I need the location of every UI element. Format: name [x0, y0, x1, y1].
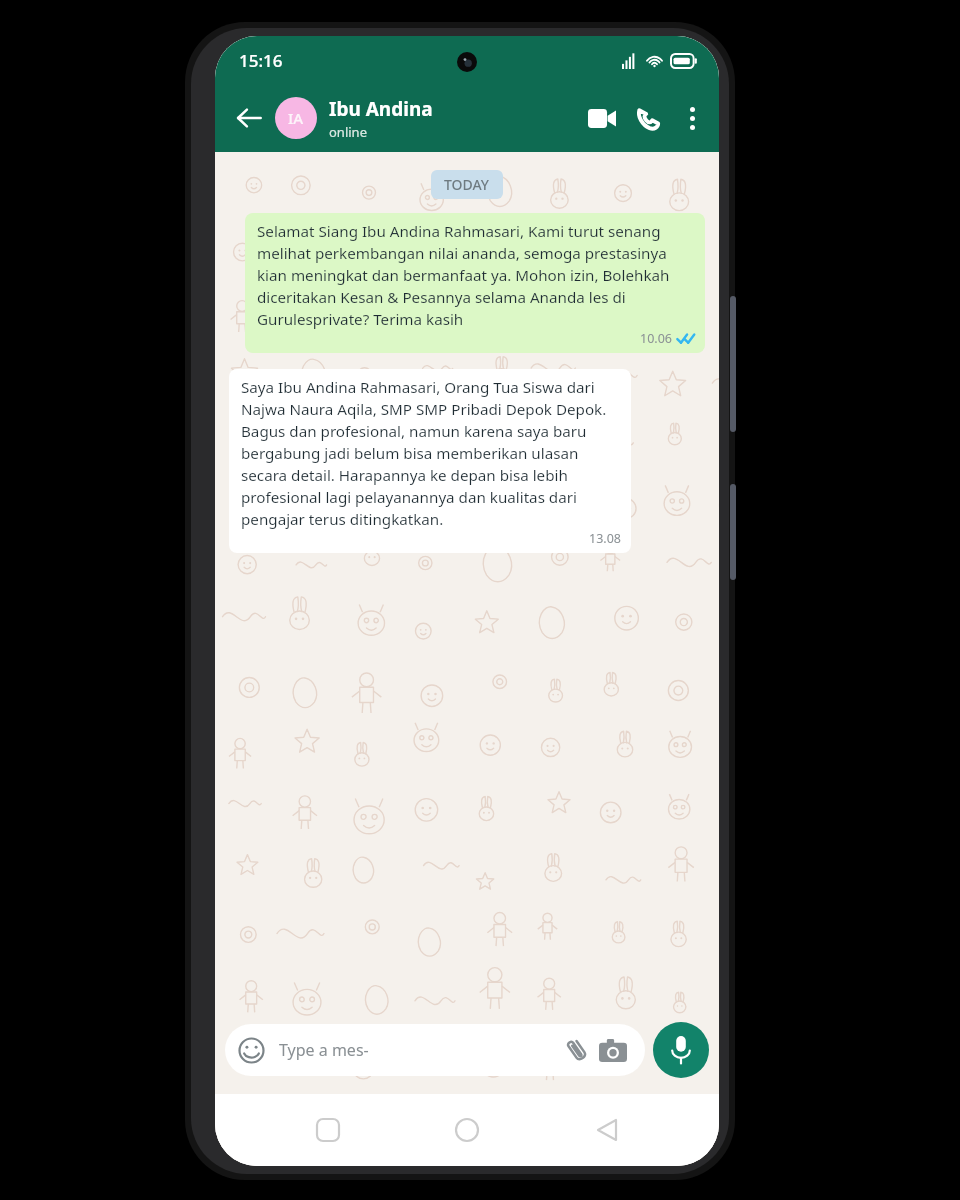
button[interactable]: Video call [579, 95, 625, 141]
button[interactable]: IA [271, 84, 579, 152]
button[interactable]: Back [580, 1103, 634, 1157]
other: Emoji [235, 1034, 267, 1066]
staticText: Selamat Siang Ibu Andina Rahmasari, Kami… [257, 221, 695, 329]
button[interactable]: More options [671, 97, 713, 139]
staticText: 15:16 [239, 49, 283, 72]
button[interactable]: Selamat Siang Ibu Andina Rahmasari, Kami… [245, 213, 705, 353]
staticText: IA [288, 108, 304, 128]
staticText: Type a mes- [279, 1039, 559, 1061]
staticText: Saya Ibu Andina Rahmasari, Orang Tua Sis… [241, 377, 621, 529]
button[interactable]: Home [440, 1103, 494, 1157]
staticText: online [329, 123, 367, 141]
other: Camera [595, 1032, 631, 1068]
button[interactable]: Recents [301, 1103, 355, 1157]
button[interactable]: Voice call [625, 95, 671, 141]
staticText: TODAY [444, 175, 490, 194]
other: Attach [559, 1032, 595, 1068]
button[interactable]: Saya Ibu Andina Rahmasari, Orang Tua Sis… [229, 369, 631, 553]
button[interactable]: Voice message [653, 1022, 709, 1078]
button[interactable]: Emoji [225, 1024, 645, 1076]
staticText: 13.08 [589, 530, 621, 547]
staticText: 10.06 [640, 330, 672, 347]
staticText: Ibu Andina [329, 96, 433, 122]
button[interactable]: Back [227, 96, 271, 140]
